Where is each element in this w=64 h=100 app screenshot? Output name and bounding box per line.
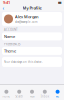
staticText: Me bbox=[56, 95, 60, 98]
staticText: ACCOUNT bbox=[4, 28, 17, 31]
staticText: Inbox bbox=[41, 95, 49, 98]
button[interactable]: New bbox=[26, 87, 38, 98]
staticText: Alex Morgan bbox=[15, 14, 39, 19]
staticText: 9:41 bbox=[3, 0, 10, 5]
staticText: PREFERENCES bbox=[4, 42, 20, 46]
button[interactable]: Home bbox=[0, 87, 13, 98]
button[interactable]: Inbox bbox=[38, 87, 51, 98]
staticText: Theme bbox=[4, 48, 16, 54]
staticText: Home bbox=[2, 95, 10, 98]
staticText: Search bbox=[15, 95, 23, 98]
staticText: Name bbox=[4, 34, 15, 39]
button[interactable]: Theme bbox=[2, 47, 62, 55]
button[interactable]: Search bbox=[13, 87, 26, 98]
staticText: ‹ bbox=[2, 4, 4, 12]
button[interactable]: Back bbox=[1, 5, 6, 11]
staticText: alex@example.com bbox=[15, 20, 37, 24]
button[interactable]: Alex Morgan bbox=[2, 12, 62, 26]
button[interactable]: Me bbox=[51, 87, 64, 98]
staticText: Your data stays on this device. bbox=[4, 60, 43, 64]
button[interactable]: Name bbox=[2, 32, 62, 40]
staticText: My Profile bbox=[22, 5, 41, 11]
staticText: New bbox=[29, 95, 34, 98]
staticText: ▮▮▮ bbox=[58, 1, 61, 4]
